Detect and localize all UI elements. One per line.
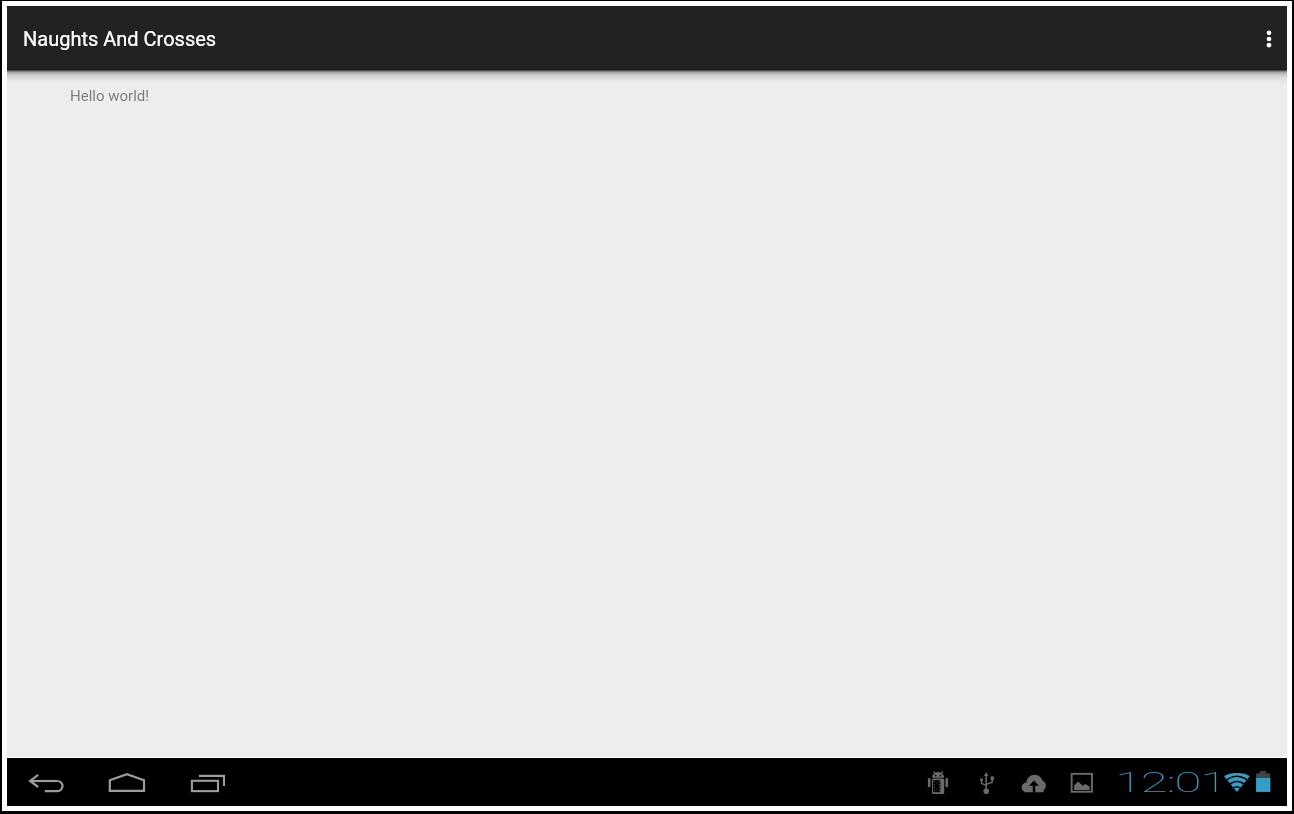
button[interactable]: Home	[110, 758, 158, 806]
button[interactable]: More options	[1237, 6, 1287, 69]
button[interactable]: Back	[29, 758, 77, 806]
button[interactable]: Recent apps	[190, 758, 238, 806]
staticText: Hello world!	[70, 87, 150, 105]
staticText: 12:01	[1115, 765, 1226, 795]
staticText: Naughts And Crosses	[23, 27, 217, 50]
